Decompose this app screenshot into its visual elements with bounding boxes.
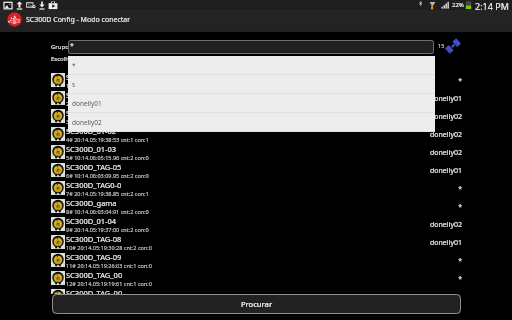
- staticText: *: [360, 274, 462, 284]
- staticText: SC300D_01-03: [66, 144, 117, 154]
- staticText: 5# 10:14.06:05:15.96 cnt:2 con:0: [66, 154, 149, 161]
- button[interactable]: SC300D_01-03: [0, 144, 512, 162]
- button[interactable]: donelly02: [68, 113, 435, 131]
- button[interactable]: SC300D_TAG-05: [0, 162, 512, 180]
- staticText: donelly02: [360, 220, 462, 230]
- staticText: SC300D_TAG_00: [66, 270, 123, 280]
- staticText: SC300D_TAG-03: [66, 108, 122, 118]
- button[interactable]: SC300D_gama: [0, 198, 512, 216]
- staticText: SC300D_gama: [66, 198, 117, 208]
- staticText: SC300D_TAG-02: [66, 90, 122, 100]
- staticText: 2# 10:14.06:05:15:96 cnt:2 con:0: [66, 100, 149, 107]
- staticText: donelly01: [72, 99, 102, 108]
- staticText: 1# 20:14.05:19:38:53 cnt:1 con:1: [66, 82, 149, 89]
- staticText: SC300D_TAG_00: [66, 288, 123, 294]
- staticText: 12# 20:14.05:19:19:61 cnt:1 con:0: [66, 280, 152, 287]
- staticText: SC300D_TAG-05: [66, 162, 122, 172]
- staticText: *: [360, 184, 462, 194]
- staticText: donelly01: [360, 238, 462, 248]
- button[interactable]: SC300D_TAG-02: [0, 90, 512, 108]
- staticText: 11# 20:14.05:19:26:03 cnt:1 con:0: [66, 262, 152, 269]
- staticText: 9# 20:14.05:19:37:00 cnt:2 con:0: [66, 226, 149, 233]
- staticText: SC300D_01-04: [66, 216, 117, 226]
- button[interactable]: SC300D_TAG-08: [0, 234, 512, 252]
- staticText: 4# 20:14.05:19:38:53 cnt:1 con:1: [66, 136, 149, 143]
- staticText: *: [72, 61, 76, 70]
- button[interactable]: SC300D_TAG0-0: [0, 180, 512, 198]
- staticText: SC300D_TAG-08: [66, 234, 122, 244]
- staticText: donelly02: [72, 118, 102, 127]
- staticText: donelly02: [360, 112, 462, 122]
- staticText: SC300D Config - Modo conectar: [26, 15, 131, 25]
- staticText: 7# 20:14.05:19:38.85 cnt:2 con:1: [66, 190, 149, 197]
- staticText: 22%: [452, 1, 464, 9]
- staticText: Procurar: [241, 299, 273, 309]
- staticText: SC300D_TAG-01: [66, 72, 122, 82]
- staticText: donelly01: [360, 166, 462, 176]
- staticText: *: [360, 76, 462, 86]
- other: GPS satellites: [444, 37, 462, 55]
- button[interactable]: SC300D_TAG_00: [0, 270, 512, 288]
- button[interactable]: SC300D_01-04: [0, 216, 512, 234]
- button[interactable]: SC300D_TAG-01: [0, 72, 512, 90]
- button[interactable]: SC300D_TAG_00: [0, 288, 512, 294]
- staticText: SC300D_TAG-09: [66, 252, 122, 262]
- button[interactable]: SC300D_TAG-03: [0, 108, 512, 126]
- staticText: 15: [438, 42, 445, 49]
- button[interactable]: SC300D_TAG-09: [0, 252, 512, 270]
- staticText: *: [70, 41, 74, 51]
- staticText: s: [72, 80, 76, 89]
- staticText: Grupo: [51, 43, 69, 51]
- staticText: 10# 20:14.05:19:30:28 cnt:2 con:0: [66, 244, 152, 251]
- button[interactable]: Procurar: [52, 294, 461, 314]
- staticText: *: [360, 256, 462, 266]
- staticText: SC300D_01-02: [66, 126, 117, 136]
- button[interactable]: donelly01: [68, 94, 435, 112]
- staticText: donelly01: [360, 94, 462, 104]
- button[interactable]: *: [68, 40, 434, 54]
- button[interactable]: SC300D_01-02: [0, 126, 512, 144]
- staticText: donelly02: [360, 148, 462, 158]
- staticText: Escolha: [51, 55, 73, 63]
- staticText: SC300D_TAG0-0: [66, 180, 122, 190]
- staticText: 3# 10:14.06:03:09:95 cnt:2 con:0: [66, 118, 149, 125]
- staticText: 8# 10:14.06:03:04:91 cnt:2 con:0: [66, 208, 149, 215]
- staticText: donelly02: [360, 130, 462, 140]
- staticText: 6# 10:14.06:03:09.95 cnt:2 con:0: [66, 172, 149, 179]
- staticText: *: [360, 202, 462, 212]
- staticText: 2:14 PM: [475, 0, 509, 10]
